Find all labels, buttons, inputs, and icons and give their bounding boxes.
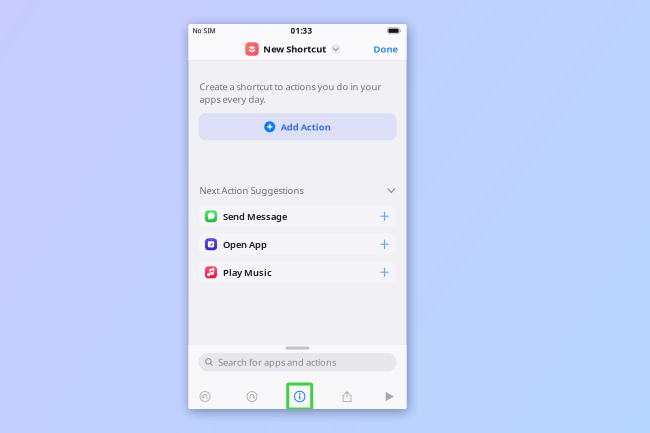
staticText: Next Action Suggestions (199, 184, 303, 196)
staticText: Search for apps and actions (218, 356, 336, 368)
staticText: No SIM (192, 26, 215, 35)
button[interactable]: Share (317, 384, 377, 409)
staticText: Create a shortcut to actions you do in y… (199, 80, 381, 105)
staticText: Add Action (281, 121, 331, 133)
button[interactable]: Undo (188, 384, 221, 409)
staticText: Done (373, 43, 397, 55)
button[interactable]: Run shortcut (377, 384, 402, 409)
staticText: 01:33 (290, 25, 312, 36)
button[interactable]: Next Action Suggestions (188, 182, 406, 198)
staticText: New Shortcut (263, 43, 326, 55)
button[interactable]: Redo (221, 384, 282, 409)
button[interactable]: Send Message (198, 205, 396, 227)
button[interactable]: Open App (198, 233, 396, 255)
button[interactable]: Play Music (198, 261, 396, 283)
staticText: Send Message (223, 210, 287, 222)
button[interactable]: Shortcut details (282, 384, 317, 409)
button[interactable]: Done (364, 37, 406, 60)
staticText: Open App (223, 238, 267, 250)
button[interactable]: New Shortcut (245, 37, 350, 60)
button[interactable]: Add Action (198, 113, 396, 140)
staticText: Play Music (223, 266, 272, 278)
